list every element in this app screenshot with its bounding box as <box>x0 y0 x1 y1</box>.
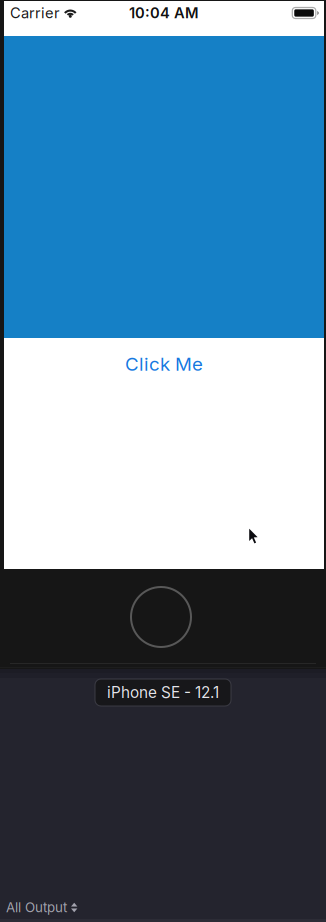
button[interactable]: Click Me <box>114 349 214 379</box>
staticText: Click Me <box>125 353 203 375</box>
staticText: iPhone SE - 12.1 <box>107 683 219 702</box>
staticText: All Output <box>6 899 67 915</box>
staticText: 10:04 AM <box>129 4 199 22</box>
button[interactable]: iPhone SE - 12.1 <box>95 679 231 706</box>
staticText: Carrier <box>10 4 60 22</box>
button[interactable]: All Output <box>0 899 83 916</box>
